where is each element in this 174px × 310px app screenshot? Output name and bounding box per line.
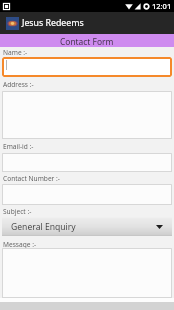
staticText: Contact Form bbox=[60, 36, 114, 47]
staticText: Email-id :- bbox=[3, 142, 34, 151]
button[interactable] bbox=[2, 248, 172, 298]
staticText: 12:01 bbox=[152, 1, 172, 11]
other: Open subject dropdown bbox=[156, 225, 163, 229]
staticText: Address :- bbox=[3, 80, 34, 89]
button[interactable] bbox=[2, 153, 172, 172]
button[interactable] bbox=[2, 184, 172, 205]
staticText: Message :- bbox=[3, 240, 37, 249]
button[interactable] bbox=[2, 91, 172, 139]
staticText: Jesus Redeems bbox=[22, 17, 84, 29]
button[interactable]: General Enquiry bbox=[2, 217, 172, 236]
staticText: General Enquiry bbox=[11, 221, 76, 233]
staticText: Subject :- bbox=[3, 207, 32, 216]
staticText: Contact Number :- bbox=[3, 174, 60, 183]
button[interactable] bbox=[2, 57, 172, 77]
staticText: Name :- bbox=[3, 48, 28, 57]
